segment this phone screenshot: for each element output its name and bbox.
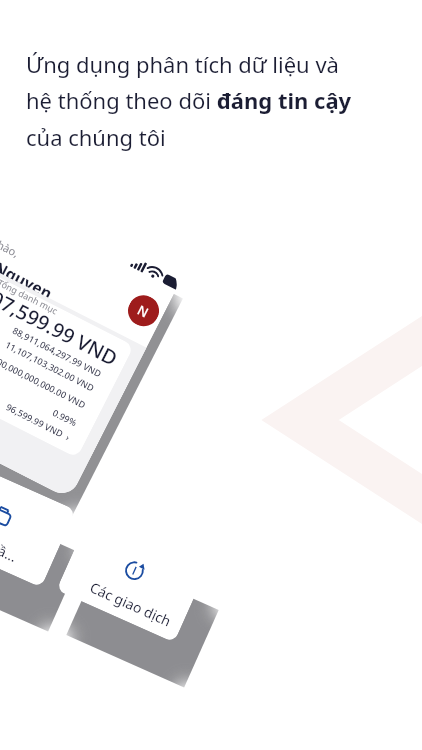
- staticText: Tổng danh mục: [0, 278, 59, 317]
- staticText: N: [134, 301, 152, 322]
- staticText: 96,599.99 VND ›: [4, 400, 72, 443]
- staticText: Nguyen: [0, 256, 56, 304]
- staticText: 88,911,064,297.99 VND: [11, 324, 104, 379]
- staticText: Các giao dịch: [87, 578, 174, 630]
- button[interactable]: đầ...: [0, 457, 76, 587]
- staticText: 0.99%: [51, 406, 79, 429]
- button[interactable]: Các giao dịch: [56, 512, 209, 642]
- staticText: 500,000,000,000.00 VND: [0, 353, 88, 411]
- staticText: 107,599.99 VND: [0, 279, 123, 372]
- staticText: Ứng dụng phân tích dữ liệu và hệ thống t…: [26, 49, 367, 152]
- staticText: 11,107,103,302.00 VND: [3, 338, 97, 394]
- staticText: đầ...: [0, 537, 20, 566]
- staticText: Xin chào,: [0, 226, 22, 260]
- button[interactable]: N: [123, 290, 164, 332]
- button[interactable]: 9:41: [0, 145, 183, 499]
